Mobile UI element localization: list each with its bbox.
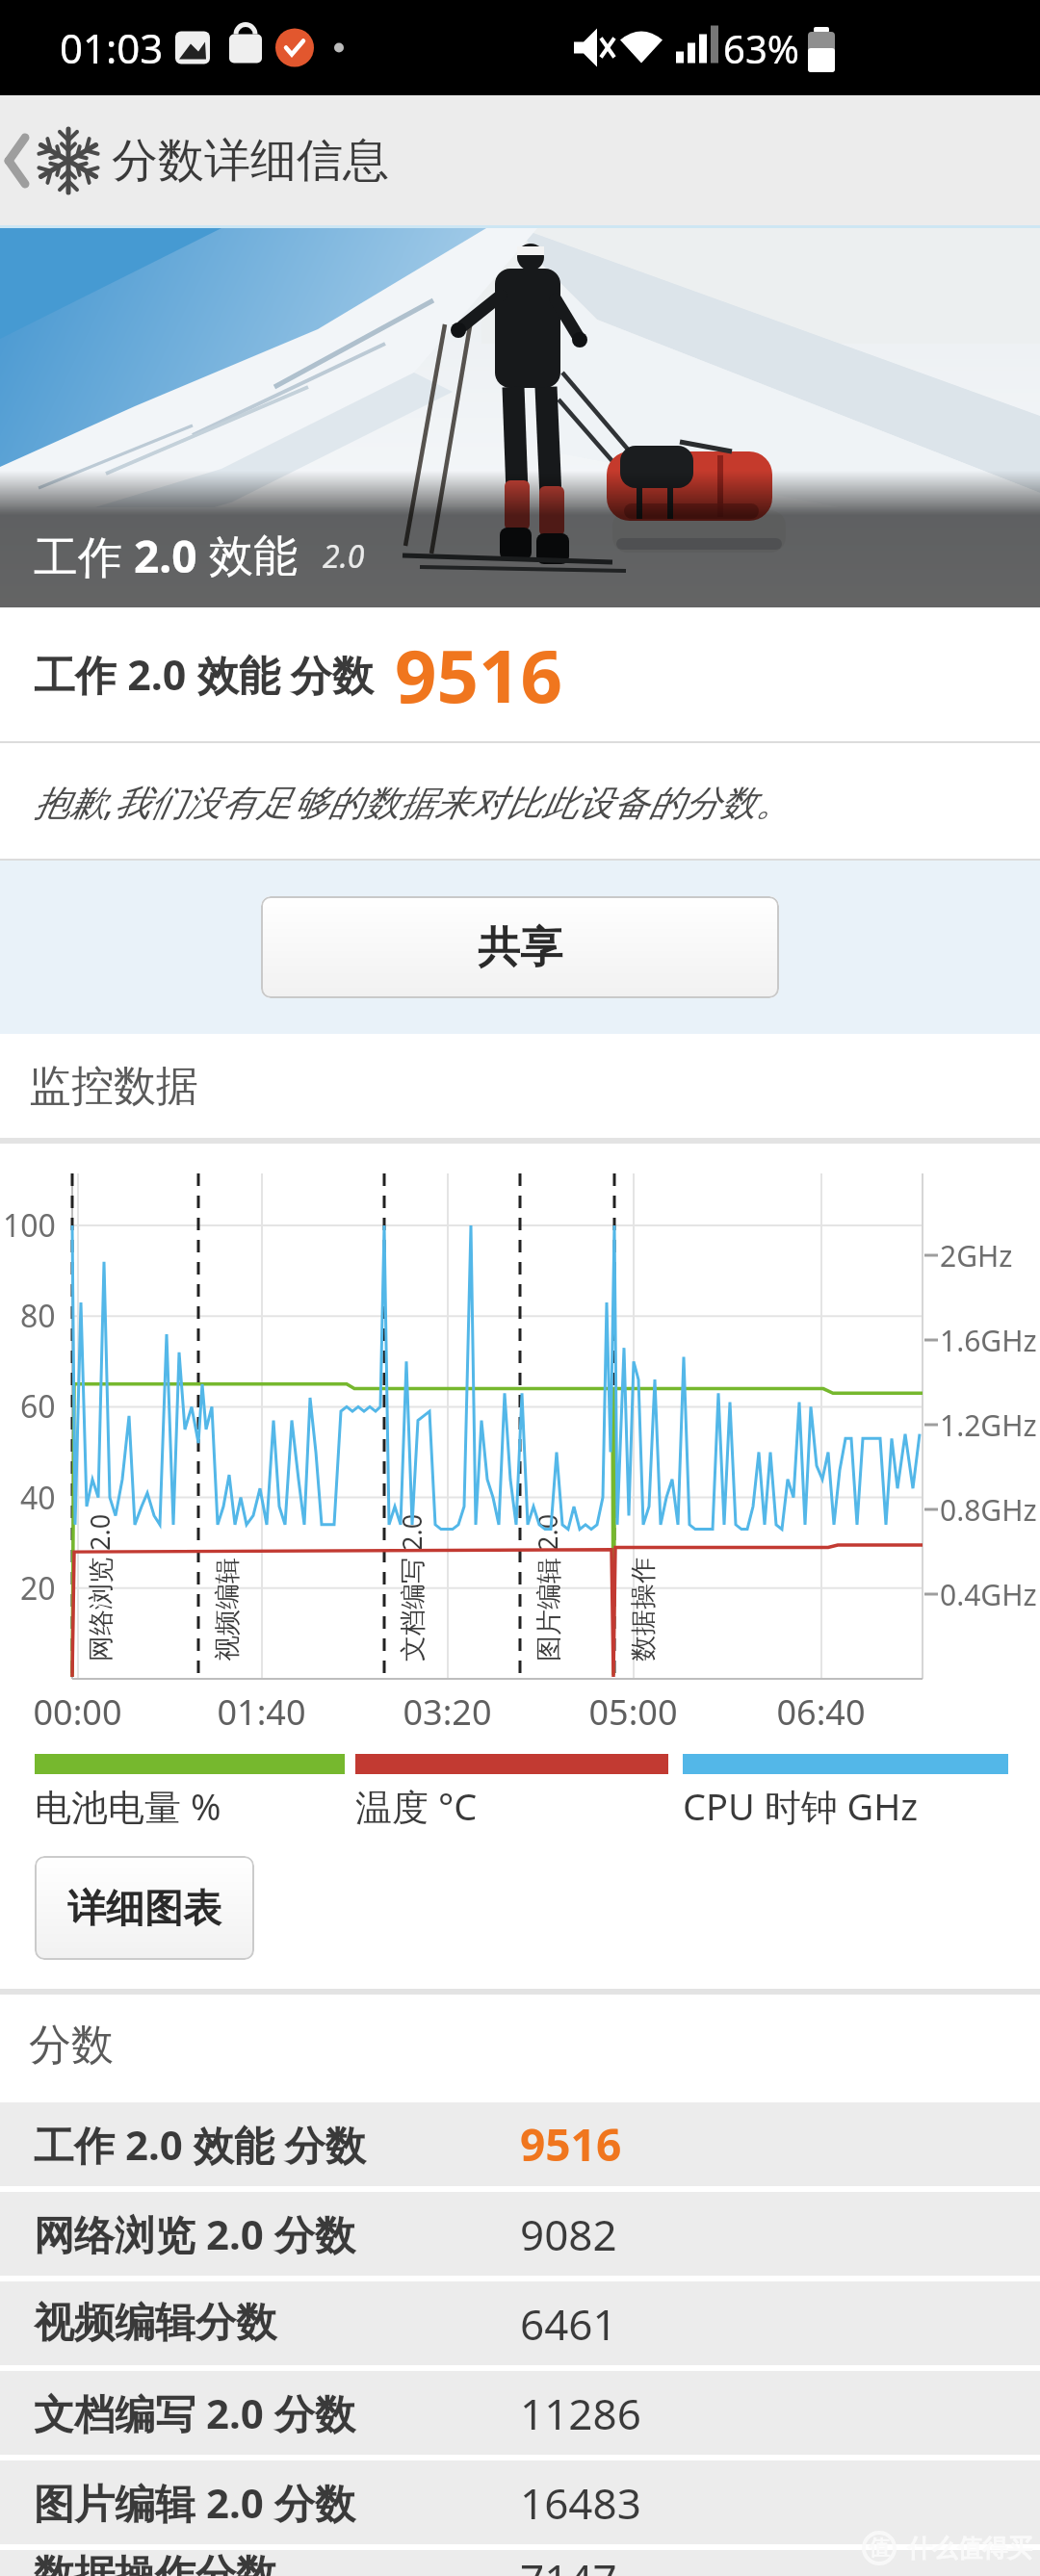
staticText: 63% [723, 22, 799, 74]
staticText: 16483 [520, 2474, 641, 2532]
staticText: 工作 2.0 效能 分数 [34, 2117, 366, 2172]
staticText: 监控数据 [29, 1060, 198, 1113]
staticText: 2.0 [323, 535, 365, 578]
staticText: 文档编写 2.0 分数 [34, 2385, 355, 2440]
button[interactable]: 文档编写 2.0 分数 [0, 2371, 1040, 2455]
button[interactable]: 数据操作分数 [0, 2550, 1040, 2576]
button[interactable]: 共享 [261, 896, 779, 998]
staticText: 视频编辑分数 [34, 2298, 276, 2349]
staticText: 2.0 [134, 526, 209, 586]
staticText: 效能 [209, 528, 298, 584]
staticText: 详细图表 [67, 1884, 221, 1932]
staticText: 工作 2.0 效能 分数 [34, 646, 374, 703]
button[interactable]: 视频编辑分数 [0, 2281, 1040, 2365]
staticText: 什么值得买 [907, 2533, 1032, 2564]
staticText: 分数详细信息 [112, 132, 389, 190]
staticText: 数据操作分数 [34, 2550, 276, 2576]
staticText: 图片编辑 2.0 分数 [34, 2475, 355, 2530]
button[interactable]: 网络浏览 2.0 分数 [0, 2192, 1040, 2276]
staticText: 共享 [478, 921, 562, 974]
staticText: 11286 [520, 2384, 641, 2442]
button[interactable] [0, 115, 35, 207]
button[interactable]: 图片编辑 2.0 分数 [0, 2460, 1040, 2544]
button[interactable]: 详细图表 [35, 1856, 254, 1960]
staticText: 值 [869, 2535, 890, 2562]
staticText: 分数 [29, 2019, 114, 2072]
staticText: 7147 [520, 2550, 617, 2576]
staticText: 9516 [520, 2114, 622, 2175]
staticText: 6461 [520, 2295, 617, 2353]
staticText: 01:03 [60, 20, 164, 75]
button[interactable]: 工作 2.0 效能 分数 [0, 2102, 1040, 2186]
staticText: 9082 [520, 2205, 617, 2263]
staticText: 9516 [395, 625, 562, 725]
staticText: 工作 [34, 526, 134, 586]
staticText: 抱歉,我们没有足够的数据来对比此设备的分数。 [34, 777, 792, 826]
staticText: 网络浏览 2.0 分数 [34, 2206, 355, 2261]
